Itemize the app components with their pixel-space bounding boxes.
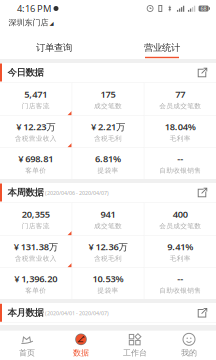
- staticText: ¥ 698.81: [18, 152, 53, 165]
- staticText: 68: [201, 5, 207, 12]
- staticText: ¥ 1,396.20: [14, 272, 57, 285]
- staticText: 5,471: [24, 88, 47, 100]
- staticText: 本月数据: [7, 307, 43, 318]
- staticText: 订单查询: [36, 42, 72, 53]
- staticText: 门店客流: [22, 102, 50, 110]
- staticText: 数据: [73, 348, 89, 358]
- button[interactable]: 营业统计: [108, 28, 216, 59]
- staticText: 深圳东门店: [8, 18, 48, 27]
- staticText: 175: [100, 88, 115, 100]
- button[interactable]: 数据: [54, 330, 108, 360]
- staticText: --: [177, 272, 183, 285]
- staticText: ◢: [49, 20, 53, 27]
- staticText: 工作台: [123, 348, 147, 358]
- staticText: 会员成交笔数: [159, 102, 201, 110]
- button[interactable]: 导出: [197, 67, 216, 78]
- staticText: 含税营业收入: [15, 254, 57, 263]
- button[interactable]: 我的: [162, 330, 216, 360]
- staticText: 自助收银销售: [159, 166, 201, 175]
- staticText: --: [177, 152, 183, 165]
- staticText: 毛利率: [170, 134, 191, 143]
- staticText: 自助收银销售: [159, 286, 201, 295]
- staticText: 9.41%: [167, 240, 193, 253]
- staticText: 20,355: [22, 208, 50, 220]
- staticText: ¥ 131.38万: [14, 240, 58, 253]
- staticText: 客单价: [25, 286, 46, 295]
- staticText: 客单价: [25, 166, 46, 175]
- staticText: 含税毛利: [94, 254, 122, 263]
- staticText: 4:16 PM: [17, 2, 51, 15]
- staticText: 毛利率: [170, 254, 191, 263]
- staticText: 本周数据: [7, 187, 43, 198]
- button[interactable]: 导出: [197, 187, 216, 198]
- staticText: 成交笔数: [94, 102, 122, 110]
- staticText: 10.53%: [92, 272, 123, 285]
- button[interactable]: 首页: [0, 330, 54, 360]
- staticText: 77: [175, 88, 185, 100]
- staticText: 6.81%: [95, 152, 121, 165]
- staticText: 营业统计: [144, 42, 180, 53]
- staticText: 提袋率: [97, 286, 118, 295]
- button[interactable]: 工作台: [108, 330, 162, 360]
- staticText: 含税毛利: [94, 134, 122, 143]
- staticText: ¥ 2.21万: [91, 120, 125, 133]
- staticText: ¥ 12.36万: [88, 240, 127, 253]
- staticText: 我的: [181, 348, 197, 358]
- staticText: 18.04%: [165, 120, 196, 133]
- staticText: (2020/04/06 - 2020/04/07): [45, 189, 109, 197]
- button[interactable]: 导出: [197, 307, 216, 318]
- button[interactable]: 订单查询: [0, 28, 108, 59]
- staticText: (2020/04/01 - 2020/04/07): [45, 310, 109, 317]
- staticText: 400: [173, 208, 188, 220]
- staticText: 提袋率: [97, 166, 118, 175]
- staticText: 941: [100, 208, 115, 220]
- staticText: 门店客流: [22, 222, 50, 230]
- staticText: 成交笔数: [94, 222, 122, 230]
- staticText: ¥ 12.23万: [16, 120, 55, 133]
- staticText: 首页: [19, 348, 35, 358]
- staticText: 含税营业收入: [15, 134, 57, 143]
- staticText: 会员成交笔数: [159, 222, 201, 230]
- staticText: 今日数据: [7, 67, 43, 78]
